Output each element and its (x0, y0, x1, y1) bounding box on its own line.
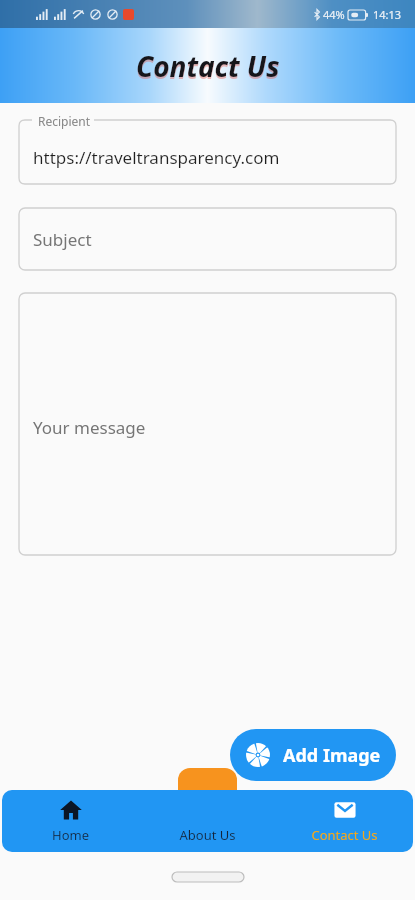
button[interactable]: Subject (19, 208, 396, 270)
staticText: Your message (33, 416, 146, 439)
button[interactable]: About Us (139, 790, 276, 852)
staticText: Recipient (38, 113, 91, 129)
staticText: Home (52, 826, 89, 844)
staticText: About Us (179, 826, 236, 844)
button[interactable]: Home (2, 790, 139, 852)
button[interactable]: Add Image (230, 729, 396, 781)
button[interactable] (178, 768, 237, 827)
staticText: 14:13 (373, 7, 402, 22)
staticText: Subject (33, 228, 92, 251)
button[interactable]: Your message (19, 293, 396, 555)
staticText: Contact Us (311, 826, 378, 844)
staticText: Contact Us (136, 49, 280, 87)
button[interactable]: Recipient (19, 120, 396, 184)
button[interactable]: Contact Us (276, 790, 413, 852)
staticText: 44% (323, 7, 345, 22)
staticText: Contact Us (136, 47, 280, 85)
staticText: https://traveltransparency.com (33, 146, 280, 169)
staticText: Add Image (283, 743, 381, 768)
